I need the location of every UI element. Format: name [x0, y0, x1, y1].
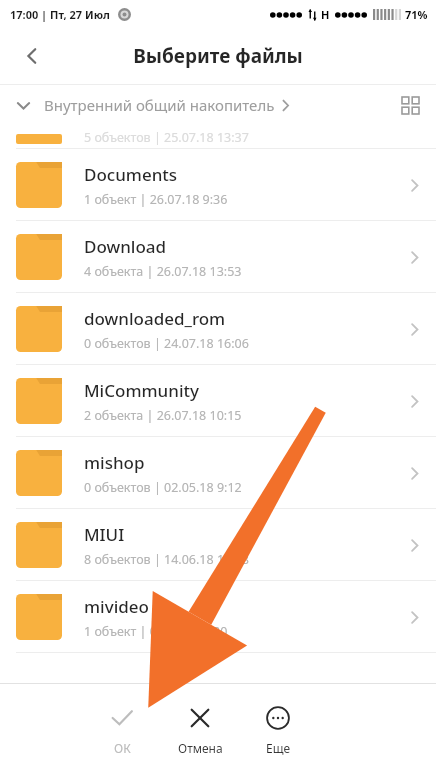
staticText: ОК	[114, 740, 131, 756]
staticText: mivideo	[84, 595, 149, 618]
staticText: 17:00 | Пт, 27 Июл	[10, 7, 110, 22]
button[interactable]: mishop	[0, 437, 436, 509]
button[interactable]: Back	[10, 34, 54, 78]
staticText: MiCommunity	[84, 379, 199, 402]
staticText: 5 объектов | 25.07.18 13:37	[84, 129, 249, 146]
button[interactable]: Еще	[252, 701, 304, 760]
staticText: 2 объекта | 26.07.18 10:15	[84, 407, 242, 424]
staticText: 71%	[405, 7, 428, 22]
button[interactable]: 5 объектов | 25.07.18 13:37	[0, 125, 436, 149]
staticText: Еще	[266, 740, 291, 756]
staticText: 8 объектов | 14.06.18 12:58	[84, 551, 249, 568]
button[interactable]: downloaded_rom	[0, 293, 436, 365]
staticText: Download	[84, 235, 167, 258]
button[interactable]: Grid view	[390, 85, 430, 125]
button[interactable]: mivideo	[0, 581, 436, 653]
staticText: downloaded_rom	[84, 307, 226, 330]
staticText: Отмена	[178, 740, 223, 756]
staticText: mishop	[84, 451, 145, 474]
staticText: 1 объект | 26.07.18 9:36	[84, 191, 228, 208]
staticText: 4 объекта | 26.07.18 13:53	[84, 263, 242, 280]
staticText: 1 объект | 02.05.18 7:30	[84, 623, 228, 640]
staticText: H	[321, 7, 330, 22]
staticText: Выберите файлы	[133, 43, 303, 69]
button[interactable]: Отмена	[174, 701, 226, 760]
staticText: Внутренний общий накопитель	[44, 95, 275, 115]
staticText: 0 объектов | 02.05.18 9:12	[84, 479, 242, 496]
button[interactable]: MIUI	[0, 509, 436, 581]
button[interactable]: Внутренний общий накопитель	[6, 88, 292, 122]
staticText: 0 объектов | 24.07.18 16:06	[84, 335, 249, 352]
button[interactable]: ОК	[96, 701, 148, 760]
button[interactable]: Download	[0, 221, 436, 293]
button[interactable]: Documents	[0, 149, 436, 221]
staticText: Documents	[84, 163, 178, 186]
staticText: MIUI	[84, 523, 125, 546]
button[interactable]: MiCommunity	[0, 365, 436, 437]
